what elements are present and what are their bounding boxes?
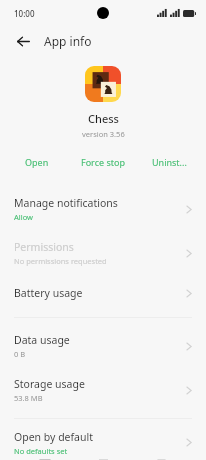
staticText: Manage notifications [14,196,118,210]
button[interactable]: Manage notifications [0,187,206,231]
staticText: 10:00 [14,8,35,19]
button: Permissions [0,231,206,275]
button[interactable]: Open [4,151,70,173]
staticText: Open by default [14,430,94,444]
staticText: 53.8 MB [14,393,43,403]
staticText: 0 B [14,349,26,359]
staticText: Storage usage [14,377,85,391]
button[interactable]: Back [12,30,34,52]
staticText: Chess [88,111,119,126]
staticText: Battery usage [14,286,83,300]
button[interactable]: Force stop [70,151,136,173]
staticText: Allow [14,212,33,222]
staticText: Uninst... [152,156,187,168]
button[interactable]: Uninst... [136,151,202,173]
staticText: No permissions requested [14,256,107,266]
button[interactable]: Open by default [0,425,206,460]
staticText: App info [44,33,92,49]
staticText: Force stop [81,156,125,168]
button[interactable]: Battery usage [0,275,206,311]
staticText: Data usage [14,333,70,347]
staticText: Open [25,156,49,168]
button[interactable]: Data usage [0,324,206,368]
staticText: Permissions [14,240,74,254]
staticText: No defaults set [14,446,68,456]
button[interactable]: Storage usage [0,368,206,412]
staticText: version 3.56 [82,129,125,139]
